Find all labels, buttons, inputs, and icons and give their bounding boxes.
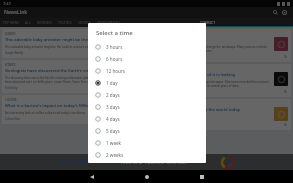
button[interactable]: Home bbox=[119, 170, 174, 183]
staticText: This adorable baby anteater might be the… bbox=[5, 45, 106, 49]
staticText: SOCIETY bbox=[78, 21, 91, 25]
button[interactable]: Recent apps bbox=[174, 170, 229, 183]
staticText: More headlines from around the world tod… bbox=[150, 107, 241, 113]
button[interactable]: 1 day bbox=[88, 77, 206, 89]
staticText: 1 week bbox=[106, 140, 122, 146]
staticText: Culture Now bbox=[5, 117, 21, 121]
staticText: ENVIRONMENT bbox=[97, 21, 120, 25]
staticText: The discovery that covers the Earth's mi… bbox=[5, 76, 142, 84]
staticText: 12 hours bbox=[106, 68, 126, 74]
button[interactable]: CULTURE bbox=[2, 95, 145, 124]
button[interactable]: 5 days bbox=[88, 125, 206, 137]
staticText: Tech Daily bbox=[5, 86, 18, 90]
staticText: An interesting look on coffee culture an… bbox=[5, 111, 86, 115]
staticText: NewsLink bbox=[4, 9, 28, 16]
button[interactable]: Search bbox=[271, 8, 280, 17]
button[interactable]: CONFLICT bbox=[123, 18, 293, 27]
button[interactable]: 2 days bbox=[88, 89, 206, 101]
button[interactable]: 4 days bbox=[88, 113, 206, 125]
staticText: Google Weekly bbox=[5, 51, 24, 55]
button[interactable]: 12 hours bbox=[88, 65, 206, 77]
staticText: CONFLICT bbox=[200, 21, 216, 25]
button[interactable]: BUSINESS bbox=[34, 18, 55, 27]
button[interactable]: SCIENCE bbox=[147, 64, 291, 97]
button[interactable]: WORLD bbox=[147, 29, 291, 62]
staticText: Geologists have discovered the Earth's m… bbox=[5, 68, 119, 74]
staticText: POLITICS bbox=[58, 21, 72, 25]
staticText: This adorable baby anteater might be the… bbox=[5, 37, 123, 43]
button[interactable]: POLITICS bbox=[55, 18, 75, 27]
staticText: SCIENCE bbox=[5, 32, 16, 36]
staticText: 4 days bbox=[106, 116, 120, 122]
button[interactable]: TOP NEWS bbox=[0, 18, 22, 27]
button[interactable]: 6 hours bbox=[88, 53, 206, 65]
button[interactable]: ALL bbox=[22, 18, 34, 27]
staticText: 5 days bbox=[106, 128, 120, 134]
staticText: Astronomers note that some of it is leak… bbox=[150, 80, 272, 88]
staticText: SCIENCE bbox=[5, 63, 16, 67]
staticText: Nice job! bbox=[60, 158, 85, 166]
staticText: BUSINESS bbox=[37, 21, 52, 25]
button[interactable]: Settings bbox=[280, 8, 289, 17]
button[interactable]: 3 hours bbox=[88, 41, 206, 53]
staticText: ALL bbox=[25, 21, 31, 25]
staticText: Select a time bbox=[96, 29, 133, 37]
staticText: CULTURE bbox=[5, 98, 17, 102]
button[interactable]: Back bbox=[64, 170, 119, 183]
staticText: 2 days bbox=[106, 92, 120, 98]
staticText: An asteroid flares, but some of it is le… bbox=[150, 72, 236, 78]
staticText: 1 day bbox=[106, 80, 118, 86]
staticText: 6h bbox=[284, 123, 288, 127]
button[interactable]: NEWS bbox=[147, 99, 291, 130]
staticText: 6 hours bbox=[106, 56, 123, 62]
staticText: 1h bbox=[284, 55, 288, 59]
button[interactable]: SOCIETY bbox=[75, 18, 94, 27]
staticText: TOP NEWS bbox=[3, 21, 19, 25]
button[interactable]: 3 days bbox=[88, 101, 206, 113]
button[interactable]: SCIENCE bbox=[2, 29, 145, 58]
button[interactable]: SCIENCE bbox=[2, 60, 145, 93]
button[interactable]: 1 week bbox=[88, 137, 206, 149]
button[interactable]: ENVIRONMENT bbox=[94, 18, 123, 27]
staticText: 2 weeks bbox=[106, 152, 124, 158]
staticText: This is a 728x90 test ad. bbox=[120, 158, 187, 166]
button[interactable]: 2 weeks bbox=[88, 149, 206, 161]
staticText: 4h bbox=[284, 90, 288, 94]
staticText: 3 hours bbox=[106, 44, 123, 50]
staticText: 7:41 bbox=[3, 1, 11, 6]
staticText: A report on how political shifts in Euro… bbox=[150, 45, 272, 53]
staticText: 3 days bbox=[106, 104, 120, 110]
staticText: What is a barista's impact on today's Mi… bbox=[5, 103, 116, 109]
